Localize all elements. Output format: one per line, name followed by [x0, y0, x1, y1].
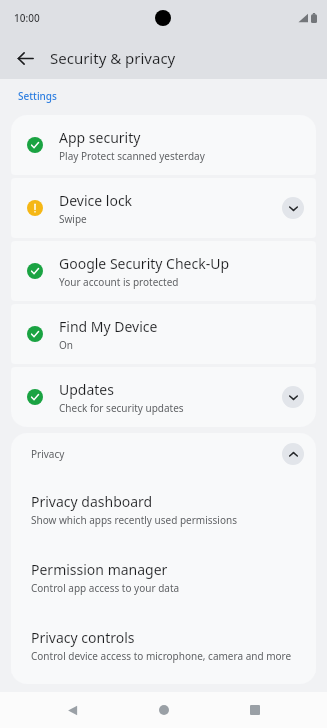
- staticText: Updates: [59, 380, 114, 399]
- staticText: Your account is protected: [59, 275, 179, 289]
- button[interactable]: Privacy: [11, 433, 316, 475]
- button[interactable]: Permission manager: [11, 549, 316, 606]
- button[interactable]: Back: [52, 692, 92, 728]
- staticText: Swipe: [59, 212, 87, 226]
- staticText: Permission manager: [31, 560, 168, 579]
- button[interactable]: Device lock: [11, 178, 316, 238]
- button[interactable]: App security: [11, 115, 316, 175]
- button[interactable]: Privacy controls: [11, 617, 316, 674]
- button[interactable]: Expand: [282, 386, 304, 408]
- button[interactable]: Recent apps: [235, 692, 275, 728]
- staticText: Control device access to microphone, cam…: [31, 649, 292, 663]
- staticText: Settings: [18, 89, 57, 103]
- button[interactable]: Collapse: [282, 443, 304, 465]
- button[interactable]: Home: [144, 692, 184, 728]
- staticText: 10:00: [14, 11, 40, 25]
- button[interactable]: Back: [8, 41, 42, 75]
- staticText: On: [59, 338, 73, 352]
- staticText: Privacy: [31, 447, 282, 461]
- button[interactable]: Expand: [282, 197, 304, 219]
- button[interactable]: Find My Device: [11, 304, 316, 364]
- staticText: Play Protect scanned yesterday: [59, 149, 205, 163]
- staticText: Find My Device: [59, 317, 158, 336]
- staticText: Privacy controls: [31, 628, 135, 647]
- staticText: Show which apps recently used permission…: [31, 513, 237, 527]
- staticText: Control app access to your data: [31, 581, 180, 595]
- staticText: Device lock: [59, 191, 133, 210]
- staticText: Security & privacy: [50, 48, 176, 68]
- button[interactable]: Privacy dashboard: [11, 481, 316, 538]
- staticText: Google Security Check-Up: [59, 254, 230, 273]
- staticText: Check for security updates: [59, 401, 184, 415]
- staticText: Privacy dashboard: [31, 492, 153, 511]
- staticText: App security: [59, 128, 141, 147]
- button[interactable]: Google Security Check-Up: [11, 241, 316, 301]
- button[interactable]: Updates: [11, 367, 316, 427]
